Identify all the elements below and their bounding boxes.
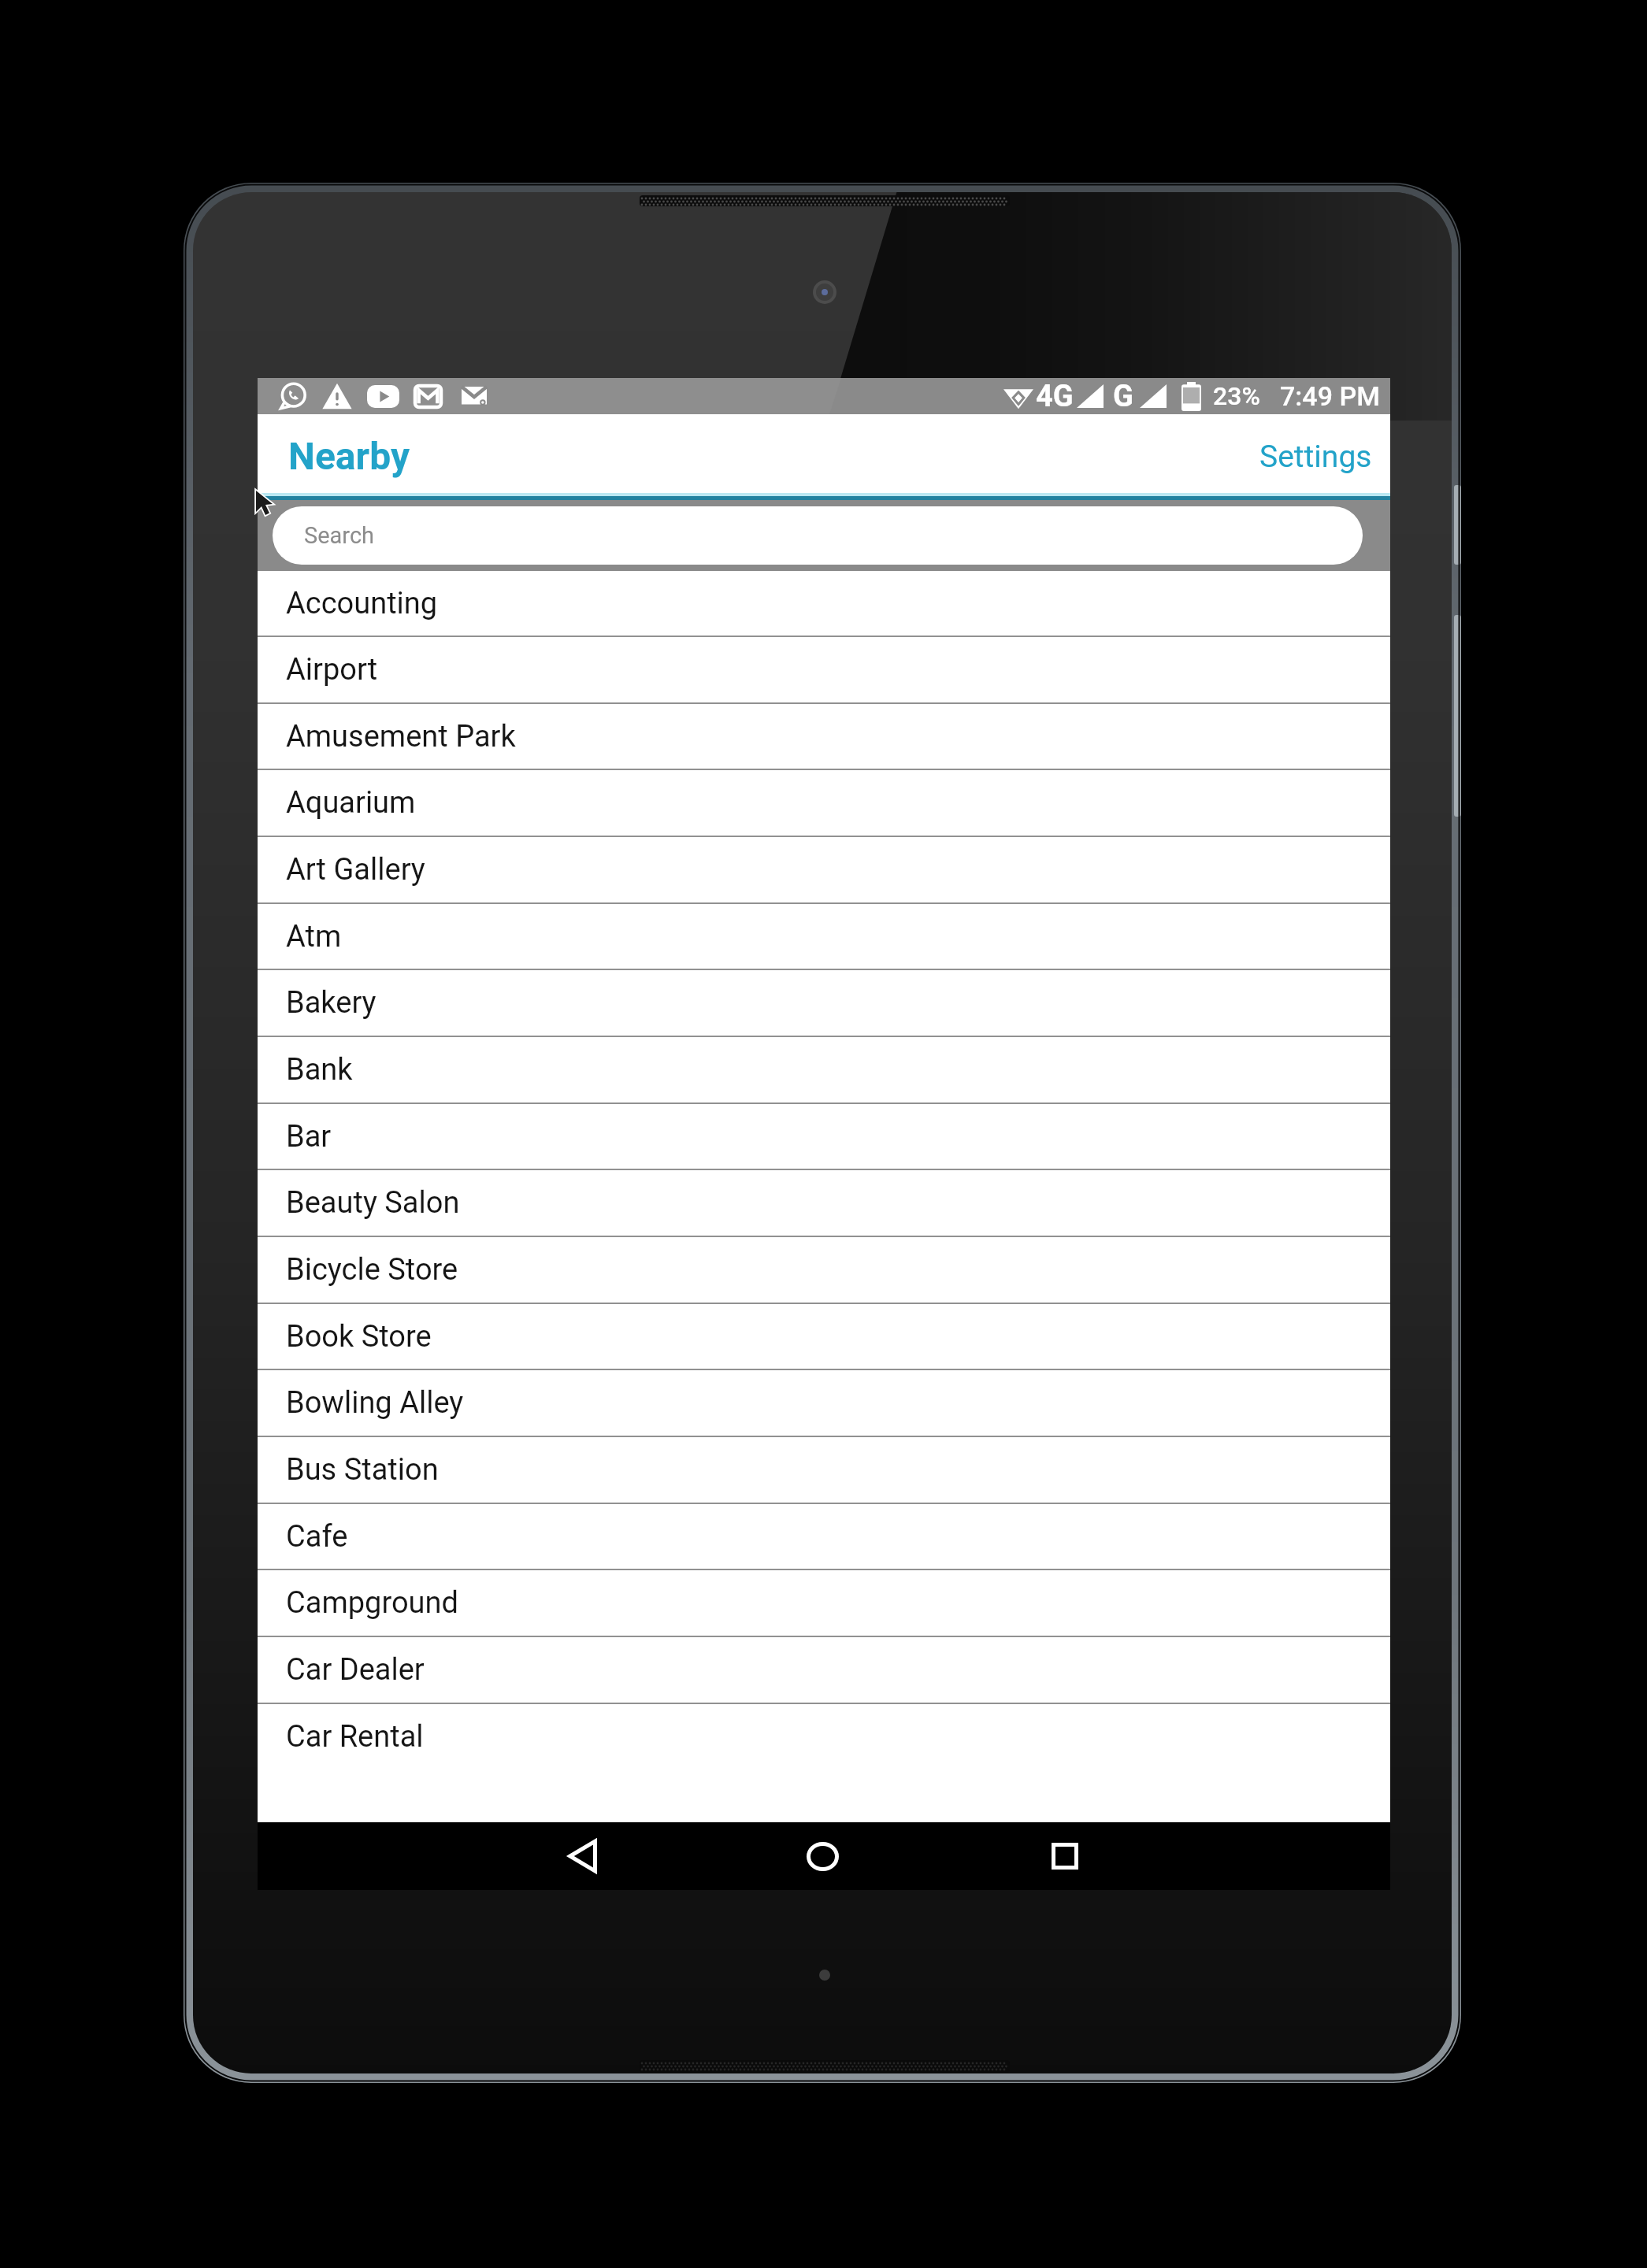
button[interactable]: Search	[273, 506, 1363, 565]
staticText: Settings	[1259, 439, 1372, 475]
staticText: Art Gallery	[286, 852, 425, 888]
button[interactable]: Bus Station	[258, 1437, 1390, 1503]
button[interactable]: Bowling Alley	[258, 1370, 1390, 1436]
staticText: Beauty Salon	[286, 1185, 460, 1221]
button[interactable]: Accounting	[258, 571, 1390, 636]
button[interactable]: Settings	[1237, 424, 1390, 489]
button[interactable]: Campground	[258, 1570, 1390, 1636]
button[interactable]: Car Dealer	[258, 1637, 1390, 1703]
staticText: G	[1113, 379, 1133, 414]
button[interactable]: Art Gallery	[258, 837, 1390, 902]
button[interactable]: Bar	[258, 1104, 1390, 1169]
staticText: Accounting	[286, 586, 438, 621]
staticText: Bus Station	[286, 1452, 439, 1488]
staticText: Bicycle Store	[286, 1252, 458, 1288]
staticText: Atm	[286, 919, 342, 954]
button[interactable]: Beauty Salon	[258, 1170, 1390, 1236]
staticText: Car Rental	[286, 1719, 424, 1755]
staticText: Bakery	[286, 985, 377, 1021]
staticText: Bowling Alley	[286, 1385, 464, 1421]
button[interactable]: Book Store	[258, 1304, 1390, 1369]
staticText: Aquarium	[286, 785, 416, 821]
button[interactable]: Bank	[258, 1037, 1390, 1102]
staticText: Bank	[286, 1052, 353, 1088]
staticText: Airport	[286, 652, 378, 687]
button[interactable]: Bicycle Store	[258, 1237, 1390, 1303]
staticText: 4G	[1036, 379, 1074, 414]
button[interactable]: Back	[542, 1822, 624, 1890]
button[interactable]: Cafe	[258, 1504, 1390, 1569]
staticText: Campground	[286, 1585, 458, 1621]
staticText: Car Dealer	[286, 1652, 425, 1688]
button[interactable]: Recents	[1024, 1822, 1106, 1890]
button[interactable]: Aquarium	[258, 770, 1390, 836]
button[interactable]: Airport	[258, 637, 1390, 702]
staticText: Bar	[286, 1119, 332, 1154]
staticText: Search	[304, 522, 375, 549]
staticText: 23%	[1213, 381, 1260, 411]
staticText: Nearby	[288, 434, 410, 478]
button[interactable]: Home	[781, 1822, 863, 1890]
button[interactable]: Amusement Park	[258, 704, 1390, 769]
staticText: Amusement Park	[286, 719, 516, 754]
button[interactable]: Atm	[258, 904, 1390, 969]
staticText: 7:49 PM	[1280, 380, 1380, 412]
staticText: Book Store	[286, 1319, 432, 1354]
staticText: Cafe	[286, 1519, 348, 1555]
button[interactable]: Car Rental	[258, 1704, 1390, 1770]
button[interactable]: Bakery	[258, 970, 1390, 1036]
